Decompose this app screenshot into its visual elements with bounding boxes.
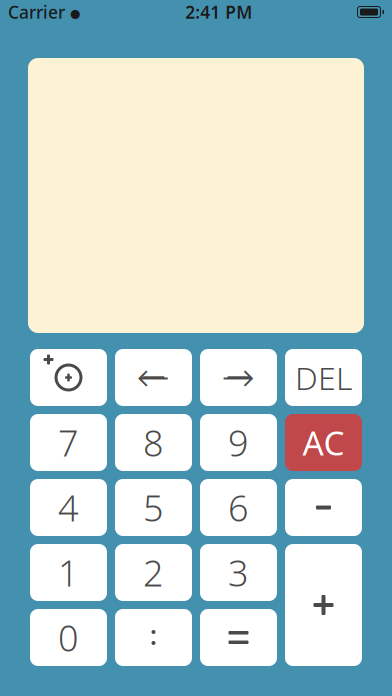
button[interactable]: 4	[30, 479, 107, 536]
button[interactable]: 0	[30, 609, 107, 666]
staticText: DEL	[295, 356, 352, 399]
staticText: 1	[58, 549, 79, 596]
button[interactable]	[200, 609, 277, 666]
button[interactable]	[285, 479, 362, 536]
staticText: ←	[136, 355, 170, 400]
staticText: 4	[58, 484, 79, 531]
staticText: 6	[228, 484, 249, 531]
staticText: ●	[70, 7, 80, 20]
button[interactable]: 5	[115, 479, 192, 536]
button[interactable]: →	[200, 349, 277, 406]
button[interactable]: 6	[200, 479, 277, 536]
staticText: 3	[228, 549, 249, 596]
button[interactable]: AC	[285, 414, 362, 471]
staticText: 2	[143, 549, 164, 596]
staticText: 8	[143, 419, 164, 466]
staticText: 2:41 PM	[185, 0, 252, 23]
button[interactable]: DEL	[285, 349, 362, 406]
button[interactable]: 1	[30, 544, 107, 601]
staticText: 7	[58, 419, 79, 466]
staticText: 5	[143, 484, 164, 531]
staticText: 9	[228, 419, 249, 466]
button[interactable]	[30, 349, 107, 406]
staticText: AC	[302, 420, 344, 465]
button[interactable]: 3	[200, 544, 277, 601]
button[interactable]: 8	[115, 414, 192, 471]
button[interactable]: ←	[115, 349, 192, 406]
staticText: Carrier	[8, 0, 65, 23]
button[interactable]: 2	[115, 544, 192, 601]
button[interactable]: 9	[200, 414, 277, 471]
button[interactable]	[115, 609, 192, 666]
button[interactable]: 7	[30, 414, 107, 471]
button[interactable]	[285, 544, 362, 666]
staticText: 0	[58, 614, 79, 661]
staticText: →	[221, 355, 255, 400]
